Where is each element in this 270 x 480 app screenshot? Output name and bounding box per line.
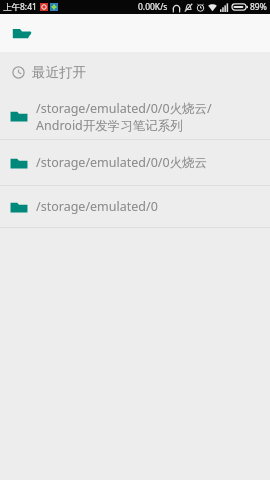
button[interactable]: /storage/emulated/0 bbox=[0, 186, 270, 227]
staticText: 上午8:41 bbox=[3, 1, 37, 13]
staticText: /storage/emulated/0/0火烧云/Android开发学习笔记系列 bbox=[36, 100, 256, 133]
button[interactable]: /storage/emulated/0/0火烧云/Android开发学习笔记系列 bbox=[0, 93, 270, 139]
button[interactable]: /storage/emulated/0/0火烧云 bbox=[0, 140, 270, 185]
staticText: 最近打开 bbox=[32, 64, 86, 81]
button[interactable]: Open folder bbox=[9, 20, 35, 46]
staticText: /storage/emulated/0 bbox=[36, 198, 158, 215]
staticText: 0.00K/s bbox=[138, 1, 168, 13]
staticText: /storage/emulated/0/0火烧云 bbox=[36, 154, 208, 171]
staticText: 89% bbox=[250, 1, 267, 13]
